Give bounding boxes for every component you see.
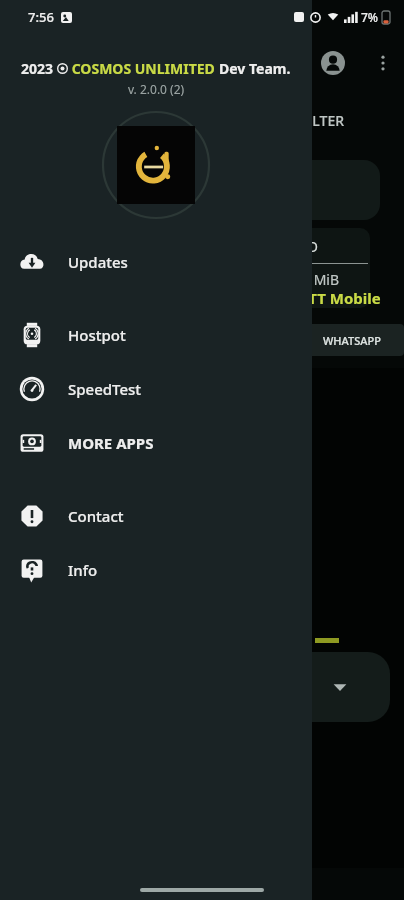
staticText: COSMOS UNLIMITED — [68, 59, 219, 78]
staticText: Hostpot — [68, 325, 126, 345]
staticText: WHATSAPP — [323, 333, 381, 348]
staticText: Dev Team. — [219, 59, 291, 78]
button[interactable]: Updates — [0, 238, 312, 286]
button[interactable]: Contact — [0, 492, 312, 540]
staticText: 7:56 — [28, 8, 54, 26]
staticText: Info — [68, 560, 98, 580]
staticText: SpeedTest — [68, 379, 142, 399]
staticText: v. 2.0.0 (2) — [128, 81, 185, 97]
button[interactable]: Expand — [290, 652, 390, 722]
staticText: 2023 — [21, 59, 57, 78]
button[interactable]: Hostpot — [0, 311, 312, 359]
button[interactable]: Info — [0, 546, 312, 594]
staticText: Contact — [68, 506, 124, 526]
staticText: MORE APPS — [68, 433, 154, 453]
staticText: FILTER — [300, 111, 345, 130]
button[interactable]: Account — [318, 48, 348, 78]
button[interactable]: WHATSAPP — [300, 324, 404, 356]
button[interactable]: MORE APPS — [0, 419, 312, 467]
staticText: 9 MiB — [302, 270, 340, 289]
staticText: STT Mobile — [300, 288, 381, 308]
staticText: ED — [300, 237, 319, 256]
button[interactable]: More options — [368, 48, 398, 78]
staticText: 7% — [361, 9, 379, 25]
staticText: Updates — [68, 252, 128, 272]
button[interactable]: SpeedTest — [0, 365, 312, 413]
